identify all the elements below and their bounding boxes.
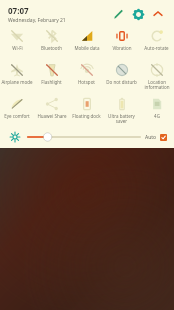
button[interactable]: Floating dock	[69, 94, 104, 128]
button[interactable]: Eye comfort	[0, 94, 34, 128]
button[interactable]: Mobile data	[69, 26, 104, 60]
staticText: Auto	[145, 134, 157, 141]
button[interactable]: Brightness slider	[28, 130, 140, 144]
button[interactable]: Wi-Fi	[0, 26, 34, 60]
button[interactable]: 4G	[139, 94, 174, 128]
staticText: Vibration	[112, 45, 132, 51]
staticText: Wednesday, February 21	[8, 17, 66, 24]
button[interactable]: Auto	[145, 134, 167, 141]
staticText: Mobile data	[74, 45, 100, 51]
button[interactable]: Bluetooth	[34, 26, 69, 60]
button[interactable]: Auto-rotate	[139, 26, 174, 60]
button[interactable]: Hotspot	[69, 60, 104, 94]
staticText: Bluetooth	[41, 45, 62, 51]
button[interactable]: Airplane mode	[0, 60, 34, 94]
button[interactable]: Brightness	[7, 129, 23, 145]
staticText: 4G	[154, 113, 160, 119]
staticText: Location information	[144, 79, 170, 91]
staticText: Auto-rotate	[144, 45, 169, 51]
staticText: Flashlight	[41, 79, 62, 85]
button[interactable]: Collapse	[148, 4, 168, 24]
button[interactable]: Vibration	[104, 26, 139, 60]
button[interactable]: Location information	[139, 60, 174, 94]
staticText: Do not disturb	[106, 79, 137, 85]
staticText: Airplane mode	[1, 79, 33, 85]
staticText: Ultra battery saver	[108, 113, 135, 125]
button[interactable]: Huawei Share	[34, 94, 69, 128]
button[interactable]: Edit	[108, 4, 128, 24]
staticText: Wi-Fi	[12, 45, 23, 51]
button[interactable]: Flashlight	[34, 60, 69, 94]
staticText: Huawei Share	[37, 113, 67, 119]
button[interactable]: Settings	[128, 4, 148, 24]
button[interactable]: Do not disturb	[104, 60, 139, 94]
button[interactable]: Ultra battery saver	[104, 94, 139, 128]
staticText: 07:07	[8, 5, 29, 16]
staticText: Floating dock	[72, 113, 101, 119]
staticText: Hotspot	[78, 79, 95, 85]
staticText: Eye comfort	[4, 113, 30, 119]
